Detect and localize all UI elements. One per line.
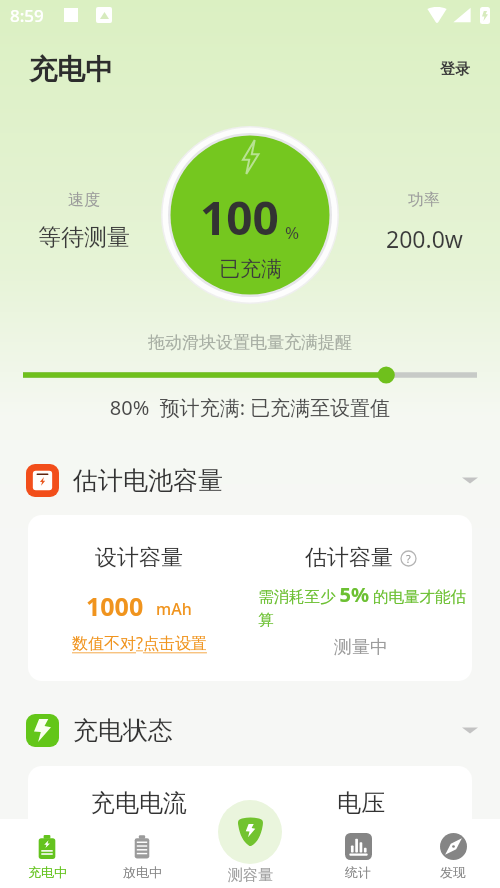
staticText: 1000 — [86, 589, 144, 623]
button[interactable]: 设计容量 — [28, 515, 472, 681]
staticText: 发现 — [440, 864, 466, 880]
staticText: 功率 — [408, 190, 440, 210]
staticText: 充电中 — [29, 52, 113, 87]
staticText: 测容量 — [228, 866, 273, 885]
staticText: 登录 — [440, 60, 470, 79]
staticText: 100 — [200, 186, 279, 249]
button[interactable]: 发现 — [403, 827, 500, 880]
staticText: 充电中 — [28, 864, 67, 880]
staticText: 速度 — [68, 190, 100, 210]
button[interactable]: 充电中 — [0, 828, 97, 880]
staticText: 统计 — [345, 864, 371, 880]
staticText: 需消耗至少 5% 的电量才能估算 — [258, 581, 472, 630]
button[interactable]: 测容量 — [200, 800, 300, 888]
staticText: 200.0w — [386, 223, 463, 254]
staticText: 80% 预计充满: 已充满至设置值 — [0, 394, 500, 421]
staticText: 等待测量 — [38, 223, 130, 252]
staticText: 放电中 — [123, 864, 162, 880]
button[interactable]: 统计 — [308, 827, 408, 880]
staticText: mAh — [156, 598, 192, 620]
button[interactable]: 数值不对?点击设置 — [72, 632, 207, 654]
staticText: 设计容量 — [95, 544, 183, 572]
staticText: 8:59 — [10, 4, 44, 27]
staticText: 测量中 — [334, 636, 388, 659]
staticText: 充电电流 — [91, 788, 187, 818]
staticText: ? — [406, 551, 411, 566]
staticText: % — [285, 221, 300, 244]
button[interactable]: Collapse section — [462, 722, 478, 738]
button[interactable]: 放电中 — [92, 828, 192, 880]
staticText: 已充满 — [219, 256, 282, 282]
button[interactable] — [0, 364, 500, 386]
staticText: 估计容量 — [305, 544, 393, 572]
staticText: 充电状态 — [73, 715, 173, 746]
staticText: 数值不对?点击设置 — [72, 632, 207, 654]
button[interactable]: 登录 — [432, 52, 478, 87]
button[interactable]: Collapse section — [462, 472, 478, 488]
button[interactable]: 充电电流 — [28, 766, 472, 886]
staticText: 估计电池容量 — [73, 465, 223, 496]
staticText: 电压 — [337, 788, 385, 818]
staticText: 拖动滑块设置电量充满提醒 — [0, 332, 500, 353]
